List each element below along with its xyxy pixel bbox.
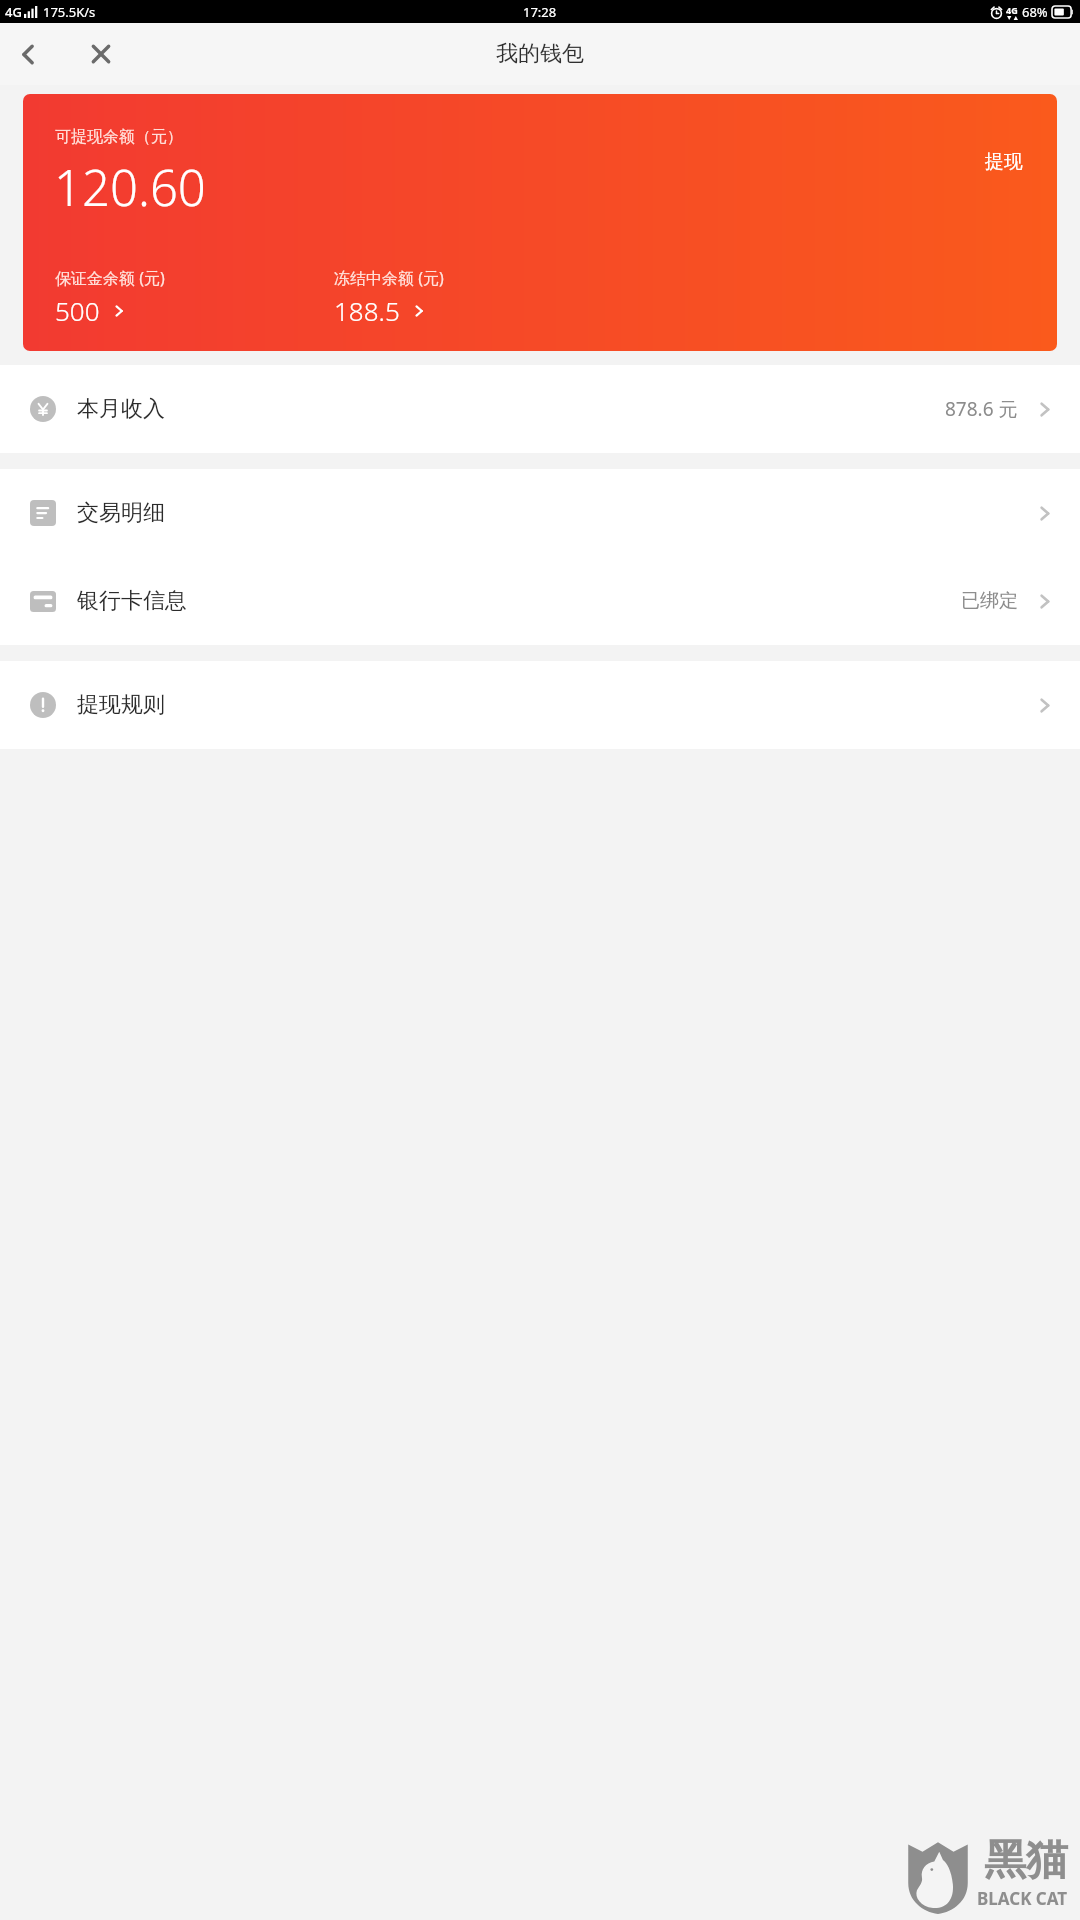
- staticText: 175.5K/s: [43, 3, 96, 21]
- staticText: 68%: [1022, 3, 1048, 21]
- button[interactable]: Close: [78, 31, 124, 77]
- staticText: 500: [55, 293, 100, 328]
- staticText: 冻结中余额 (元): [334, 267, 444, 289]
- button[interactable]: 提现: [963, 140, 1045, 184]
- staticText: 保证金余额 (元): [55, 267, 165, 289]
- staticText: 提现: [985, 150, 1023, 174]
- staticText: 本月收入: [77, 395, 165, 423]
- button[interactable]: Back: [5, 31, 51, 77]
- button[interactable]: 交易明细: [0, 469, 1080, 557]
- staticText: 提现规则: [77, 691, 165, 719]
- button[interactable]: 银行卡信息: [0, 557, 1080, 645]
- button[interactable]: 冻结中余额 (元): [334, 267, 444, 328]
- staticText: 4G: [5, 3, 22, 21]
- button[interactable]: 提现规则: [0, 661, 1080, 749]
- staticText: 我的钱包: [496, 40, 584, 68]
- button[interactable]: 保证金余额 (元): [55, 267, 165, 328]
- staticText: 188.5: [334, 293, 400, 328]
- staticText: 878.6 元: [945, 396, 1018, 422]
- button[interactable]: 可提现余额（元）: [23, 94, 1057, 351]
- staticText: 已绑定: [961, 589, 1018, 613]
- staticText: 17:28: [523, 3, 557, 21]
- staticText: BLACK CAT: [977, 1887, 1068, 1910]
- staticText: 银行卡信息: [77, 587, 187, 615]
- staticText: 黑猫: [984, 1834, 1068, 1887]
- staticText: 可提现余额（元）: [55, 127, 183, 147]
- staticText: 交易明细: [77, 499, 165, 527]
- staticText: 120.60: [54, 154, 206, 221]
- staticText: 4G: [1006, 4, 1018, 16]
- button[interactable]: 本月收入: [0, 365, 1080, 453]
